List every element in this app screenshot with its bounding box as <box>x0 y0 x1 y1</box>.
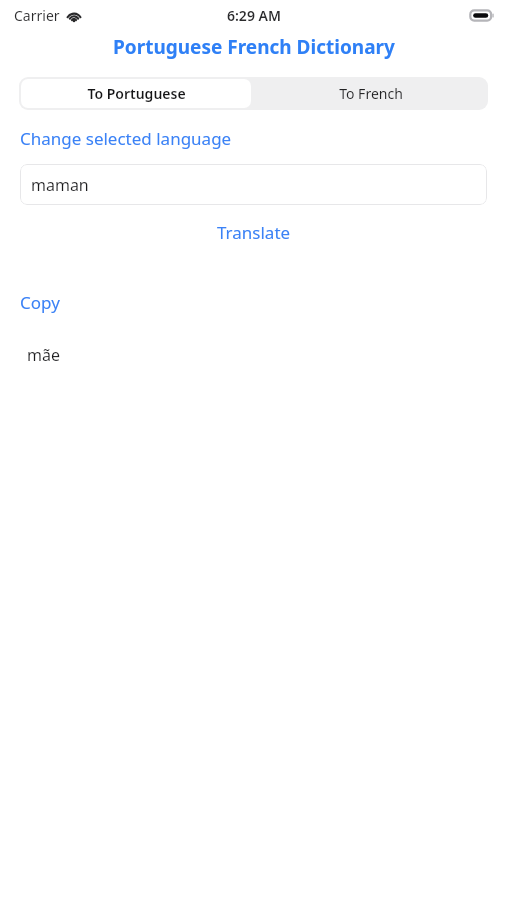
staticText: Change selected language <box>20 127 232 150</box>
staticText: Portuguese French Dictionary <box>113 34 395 60</box>
button[interactable]: To French <box>253 77 488 110</box>
other: Wi-Fi signal <box>66 10 82 22</box>
staticText: maman <box>31 174 89 196</box>
staticText: Carrier <box>14 6 60 25</box>
button[interactable]: To Portuguese <box>21 79 251 108</box>
staticText: 6:29 AM <box>227 6 281 25</box>
button[interactable]: Translate <box>201 215 307 250</box>
other: Battery full <box>469 9 495 22</box>
staticText: mãe <box>27 344 60 366</box>
staticText: To Portuguese <box>87 84 186 103</box>
staticText: To French <box>339 84 403 103</box>
staticText: Translate <box>217 221 291 244</box>
button[interactable]: maman <box>20 164 487 205</box>
button[interactable]: Copy <box>18 288 62 317</box>
staticText: Copy <box>20 291 60 314</box>
button[interactable]: Change selected language <box>18 124 234 153</box>
